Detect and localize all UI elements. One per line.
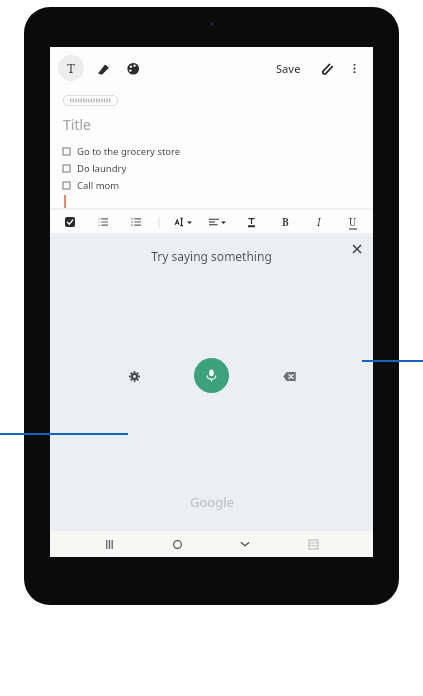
button[interactable]: Keyboard xyxy=(301,532,325,556)
staticText: Save xyxy=(276,61,301,76)
button[interactable]: Save xyxy=(272,57,305,80)
staticText: Try saying something xyxy=(151,248,272,264)
button[interactable]: Recents xyxy=(97,532,121,556)
button[interactable]: Alignment xyxy=(207,211,227,233)
button[interactable]: Draw xyxy=(92,57,114,79)
button[interactable]: Call mom xyxy=(63,177,373,194)
button[interactable]: Go to the grocery store xyxy=(63,143,373,160)
staticText: Do laundry xyxy=(77,162,127,175)
button[interactable]: Text size xyxy=(173,211,193,233)
button[interactable]: Palette xyxy=(122,57,144,79)
staticText: Go to the grocery store xyxy=(77,145,181,158)
staticText: B xyxy=(282,215,289,229)
staticText: Call mom xyxy=(77,179,120,192)
button[interactable]: Text colour xyxy=(241,211,261,233)
staticText: Google xyxy=(190,493,234,511)
button[interactable]: More options xyxy=(343,57,365,79)
button[interactable]: Home xyxy=(165,532,189,556)
staticText: U xyxy=(349,215,357,229)
button[interactable]: Bulleted list xyxy=(93,211,113,233)
button[interactable]: Underline xyxy=(343,211,363,233)
button[interactable]: Microphone xyxy=(194,358,229,393)
button[interactable]: Checklist xyxy=(60,211,80,233)
staticText: Title xyxy=(63,115,91,134)
button[interactable]: Text mode xyxy=(58,55,84,81)
button[interactable]: Numbered list xyxy=(126,211,146,233)
button[interactable]: Attach xyxy=(315,57,337,79)
button[interactable]: Bold xyxy=(275,211,295,233)
button[interactable]: Close xyxy=(349,241,365,257)
button[interactable]: Do laundry xyxy=(63,160,373,177)
button[interactable] xyxy=(63,95,118,106)
staticText: I xyxy=(317,215,321,229)
button[interactable]: Italic xyxy=(309,211,329,233)
button[interactable]: Settings xyxy=(122,364,146,388)
staticText: T xyxy=(67,59,75,77)
button[interactable]: Backspace xyxy=(277,364,301,388)
button[interactable]: Back xyxy=(233,532,257,556)
